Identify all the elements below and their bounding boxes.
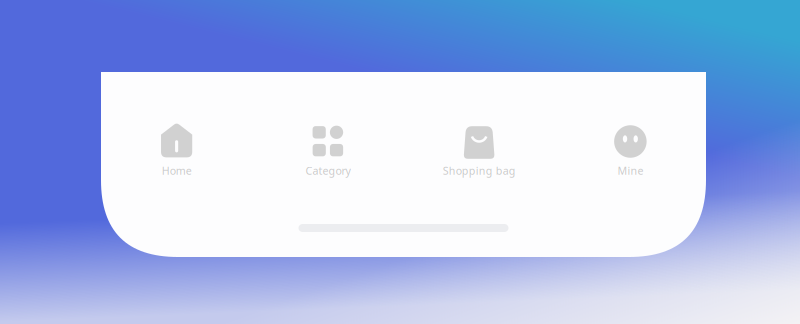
button[interactable]: Category (252, 123, 403, 178)
button[interactable]: Home (101, 123, 252, 178)
staticText: Home (162, 163, 192, 178)
button[interactable]: Mine (555, 123, 706, 178)
staticText: Category (305, 163, 350, 178)
staticText: Mine (617, 163, 643, 178)
button[interactable]: Shopping bag (403, 123, 555, 178)
staticText: Shopping bag (443, 163, 516, 178)
